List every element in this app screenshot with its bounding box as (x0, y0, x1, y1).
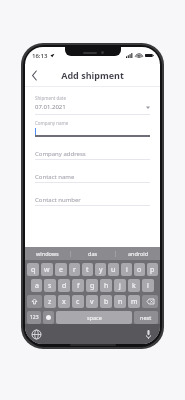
button[interactable]: z (44, 295, 56, 308)
button[interactable]: Company address (35, 148, 150, 160)
button[interactable]: next (134, 311, 158, 324)
button[interactable]: h (100, 279, 112, 292)
button[interactable]: o (134, 263, 145, 276)
staticText: p (150, 265, 155, 275)
button[interactable]: m (128, 295, 140, 308)
staticText: Shipment date (35, 95, 66, 101)
button[interactable]: Contact number (35, 194, 150, 206)
staticText: d (62, 281, 67, 291)
button[interactable]: space (56, 311, 132, 324)
staticText: das (88, 250, 98, 257)
button[interactable]: k (128, 279, 140, 292)
staticText: space (87, 314, 102, 321)
staticText: e (59, 265, 63, 275)
staticText: n (118, 297, 123, 307)
staticText: r (73, 265, 76, 275)
button[interactable]: Backspace (142, 295, 158, 308)
staticText: s (48, 281, 52, 291)
staticText: c (76, 297, 80, 307)
button[interactable]: windows (25, 247, 70, 260)
button[interactable]: Shipment date (35, 95, 150, 115)
staticText: b (104, 297, 109, 307)
button[interactable]: g (86, 279, 98, 292)
button[interactable]: android (116, 247, 160, 260)
staticText: Contact name (35, 173, 75, 181)
button[interactable]: das (71, 247, 115, 260)
staticText: z (48, 297, 52, 307)
button[interactable]: Shift (27, 295, 42, 308)
button[interactable]: s (44, 279, 56, 292)
staticText: 07.01.2021 (35, 103, 146, 111)
staticText: Company address (35, 150, 86, 158)
staticText: t (86, 265, 89, 275)
staticText: windows (36, 250, 59, 257)
staticText: 16:13 (32, 52, 48, 60)
staticText: v (90, 297, 94, 307)
staticText: i (126, 265, 128, 275)
button[interactable]: Voice input (142, 328, 154, 340)
staticText: w (44, 265, 50, 275)
button[interactable]: 123 (27, 311, 41, 324)
staticText: android (128, 250, 149, 257)
staticText: u (111, 265, 116, 275)
button[interactable]: q (27, 263, 39, 276)
button[interactable]: e (55, 263, 67, 276)
button[interactable]: Change language (30, 328, 42, 340)
button[interactable]: Back (25, 66, 43, 84)
staticText: f (77, 281, 80, 291)
button[interactable]: y (95, 263, 106, 276)
staticText: l (147, 281, 149, 291)
staticText: 123 (30, 314, 39, 321)
button[interactable]: a (31, 279, 42, 292)
staticText: x (62, 297, 66, 307)
staticText: g (90, 281, 95, 291)
button[interactable]: w (41, 263, 53, 276)
button[interactable]: r (69, 263, 80, 276)
staticText: h (104, 281, 109, 291)
button[interactable]: n (114, 295, 126, 308)
button[interactable]: d (58, 279, 70, 292)
button[interactable]: t (82, 263, 93, 276)
button[interactable]: Emoji (43, 311, 54, 324)
staticText: o (137, 265, 142, 275)
staticText: m (131, 297, 138, 307)
button[interactable]: f (72, 279, 84, 292)
staticText: j (119, 281, 121, 291)
button[interactable]: x (58, 295, 70, 308)
button[interactable]: j (114, 279, 126, 292)
button[interactable]: Contact name (35, 171, 150, 183)
staticText: k (132, 281, 136, 291)
staticText: y (99, 265, 103, 275)
staticText: Contact number (35, 196, 81, 204)
staticText: q (31, 265, 36, 275)
button[interactable]: i (121, 263, 132, 276)
button[interactable]: v (86, 295, 98, 308)
staticText: Add shipment (61, 69, 124, 81)
button[interactable]: p (147, 263, 158, 276)
staticText: next (140, 314, 152, 321)
staticText: a (35, 281, 39, 291)
staticText: Company name (35, 120, 69, 126)
button[interactable]: b (100, 295, 112, 308)
button[interactable]: c (72, 295, 84, 308)
button[interactable]: u (108, 263, 119, 276)
button[interactable]: l (142, 279, 154, 292)
button[interactable]: Company name (35, 120, 150, 137)
